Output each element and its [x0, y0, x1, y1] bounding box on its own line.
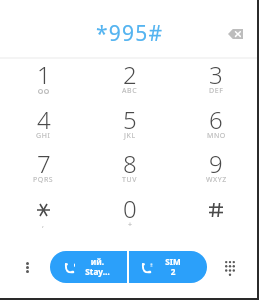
button[interactable]: Dialpad	[216, 254, 243, 281]
button[interactable]	[173, 193, 259, 237]
button[interactable]: ,	[0, 193, 87, 237]
staticText: 3	[209, 58, 223, 91]
button[interactable]: 1	[0, 59, 87, 103]
staticText: 4	[37, 103, 51, 136]
staticText: 9	[209, 147, 223, 180]
button[interactable]: 2	[87, 59, 173, 103]
staticText: MNO	[207, 131, 226, 141]
button[interactable]: 7	[0, 148, 87, 192]
button[interactable]: 8	[87, 148, 173, 192]
staticText: TUV	[122, 175, 138, 185]
staticText: 8	[123, 147, 137, 180]
staticText: WXYZ	[206, 175, 227, 185]
button[interactable]: Backspace	[220, 19, 250, 49]
staticText: ий. Stay…	[85, 256, 110, 278]
staticText: 1	[37, 58, 51, 91]
staticText: ,	[42, 220, 45, 230]
staticText: JKL	[124, 131, 136, 141]
button[interactable]: 6	[173, 104, 259, 148]
button[interactable]: 4	[0, 104, 87, 148]
button[interactable]: More options	[14, 254, 41, 281]
staticText: DEF	[209, 86, 224, 96]
staticText: +	[128, 220, 133, 230]
staticText: SIM 2	[165, 256, 181, 278]
staticText: PQRS	[33, 175, 54, 185]
button[interactable]: 0	[87, 193, 173, 237]
staticText: 6	[209, 103, 223, 136]
staticText: 7	[37, 147, 51, 180]
staticText: 5	[123, 103, 137, 136]
staticText: 2	[123, 58, 137, 91]
button[interactable]: ий. Stay…	[50, 251, 127, 283]
button[interactable]: SIM 2	[129, 251, 207, 283]
staticText: 0	[123, 192, 137, 225]
button[interactable]: 5	[87, 104, 173, 148]
staticText: *995#	[96, 19, 164, 48]
button[interactable]: 9	[173, 148, 259, 192]
button[interactable]: 3	[173, 59, 259, 103]
staticText: GHI	[36, 131, 51, 141]
staticText: ABC	[122, 86, 138, 96]
